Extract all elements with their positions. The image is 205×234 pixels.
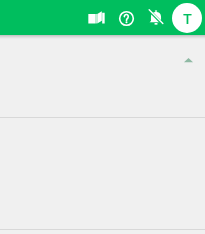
button[interactable]: Help [111, 3, 141, 33]
button[interactable]: Account [172, 3, 202, 33]
staticText: T [183, 8, 192, 28]
button[interactable]: Notifications off [141, 3, 171, 33]
button[interactable]: Guide [81, 3, 111, 33]
button[interactable]: Collapse [179, 51, 197, 69]
